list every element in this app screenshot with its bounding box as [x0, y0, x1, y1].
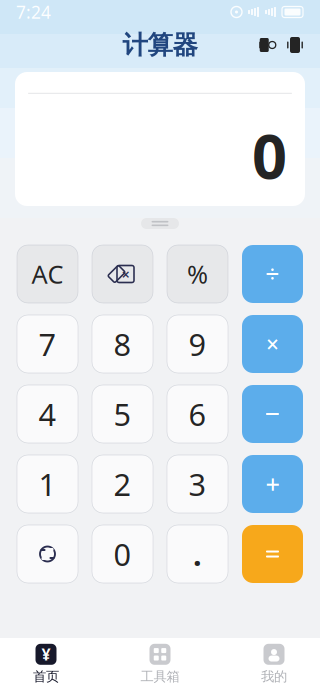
button[interactable]: 9 — [167, 315, 228, 373]
button[interactable]: 等于 — [242, 525, 303, 583]
staticText: 8 — [113, 324, 131, 364]
button[interactable]: 0 — [92, 525, 153, 583]
button[interactable]: 减 — [242, 385, 303, 443]
button[interactable]: ¥ — [6, 642, 86, 686]
staticText: 1 — [38, 464, 56, 504]
button[interactable]: 乘 — [242, 315, 303, 373]
staticText: 我的 — [261, 668, 287, 685]
staticText: 0 — [252, 115, 287, 196]
button[interactable]: 振动 — [280, 30, 310, 60]
staticText: 7 — [38, 324, 56, 364]
staticText: 6 — [188, 394, 206, 434]
button[interactable]: 4 — [17, 385, 78, 443]
button[interactable]: 除 — [242, 245, 303, 303]
staticText: 3 — [188, 464, 206, 504]
button[interactable]: 8 — [92, 315, 153, 373]
staticText: × — [121, 264, 129, 284]
staticText: 2 — [113, 464, 131, 504]
button[interactable]: 6 — [167, 385, 228, 443]
button[interactable]: 加 — [242, 455, 303, 513]
staticText: . — [193, 534, 202, 574]
button[interactable]: 工具箱 — [120, 642, 200, 686]
staticText: % — [187, 257, 208, 291]
button[interactable]: % — [167, 245, 228, 303]
staticText: 首页 — [33, 668, 59, 685]
staticText: 0 — [113, 534, 131, 574]
staticText: 计算器 — [122, 29, 197, 60]
button[interactable]: 换算 — [17, 525, 78, 583]
staticText: 7:24 — [16, 0, 51, 23]
button[interactable]: 退格 — [92, 245, 153, 303]
button[interactable]: 2 — [92, 455, 153, 513]
button[interactable]: 声音 — [250, 30, 280, 60]
staticText: 9 — [188, 324, 206, 364]
button[interactable]: 7 — [17, 315, 78, 373]
button[interactable]: AC — [17, 245, 78, 303]
staticText: ¥ — [41, 644, 50, 665]
button[interactable]: 1 — [17, 455, 78, 513]
staticText: AC — [31, 257, 63, 291]
staticText: 工具箱 — [140, 668, 179, 685]
button[interactable]: 3 — [167, 455, 228, 513]
staticText: + — [265, 467, 279, 501]
staticText: × — [266, 329, 279, 359]
button[interactable]: 5 — [92, 385, 153, 443]
button[interactable]: . — [167, 525, 228, 583]
staticText: 5 — [113, 394, 131, 434]
staticText: 4 — [38, 394, 56, 434]
button[interactable]: 我的 — [234, 642, 314, 686]
